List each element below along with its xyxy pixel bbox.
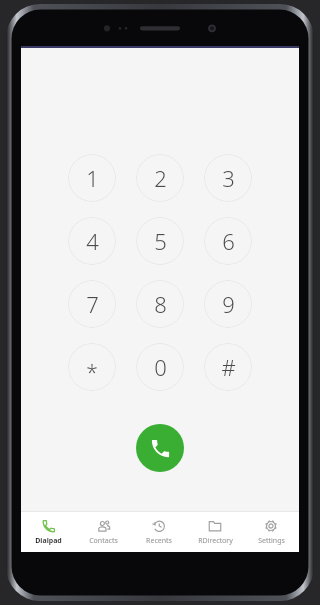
button[interactable]: 2 — [136, 154, 184, 202]
button[interactable]: 7 — [68, 280, 116, 328]
button[interactable]: 4 — [68, 217, 116, 265]
staticText: Recents — [146, 536, 172, 546]
button[interactable]: Contacts — [76, 512, 131, 552]
button[interactable]: 5 — [136, 217, 184, 265]
staticText: 5 — [154, 226, 167, 256]
button[interactable]: Call — [136, 424, 184, 472]
staticText: * — [86, 358, 98, 387]
staticText: 7 — [86, 289, 99, 319]
button[interactable]: RDirectory — [187, 512, 243, 552]
staticText: # — [221, 352, 236, 382]
staticText: 0 — [154, 352, 167, 382]
staticText: 8 — [154, 289, 167, 319]
button[interactable]: 9 — [204, 280, 252, 328]
staticText: RDirectory — [198, 536, 233, 546]
staticText: 3 — [222, 163, 235, 193]
button[interactable]: Recents — [131, 512, 187, 552]
button[interactable]: 8 — [136, 280, 184, 328]
staticText: 9 — [222, 289, 235, 319]
button[interactable]: Settings — [243, 512, 299, 552]
staticText: Contacts — [89, 536, 118, 546]
staticText: 2 — [154, 163, 167, 193]
staticText: 6 — [222, 226, 235, 256]
button[interactable]: 6 — [204, 217, 252, 265]
staticText: 4 — [86, 226, 99, 256]
button[interactable]: 3 — [204, 154, 252, 202]
button[interactable]: # — [204, 343, 252, 391]
button[interactable]: 1 — [68, 154, 116, 202]
staticText: 1 — [86, 163, 99, 193]
button[interactable]: * — [68, 343, 116, 391]
button[interactable]: Dialpad — [21, 512, 76, 552]
staticText: Settings — [258, 536, 285, 546]
staticText: Dialpad — [35, 536, 62, 546]
button[interactable]: 0 — [136, 343, 184, 391]
